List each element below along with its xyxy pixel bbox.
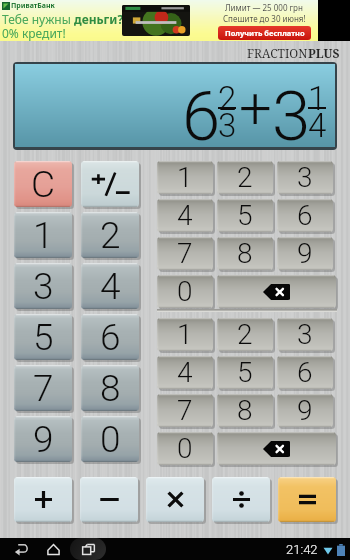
staticText: 2 bbox=[100, 214, 121, 257]
button[interactable]: Home bbox=[40, 540, 66, 558]
button[interactable]: 7 bbox=[157, 394, 213, 427]
button[interactable]: 6 bbox=[277, 199, 333, 232]
staticText: PLUS bbox=[308, 45, 340, 61]
staticText: 0 bbox=[100, 418, 121, 461]
staticText: 6 bbox=[100, 316, 121, 359]
staticText: Спешите до 30 июня! bbox=[223, 13, 306, 24]
staticText: 8 bbox=[237, 394, 253, 427]
staticText: 6 bbox=[297, 199, 313, 232]
button[interactable]: 6 bbox=[81, 314, 139, 360]
other: Backspace bbox=[263, 284, 290, 300]
button[interactable]: 1 bbox=[157, 161, 213, 194]
button[interactable]: Back bbox=[8, 540, 34, 558]
staticText: ПриватБанк bbox=[11, 1, 55, 11]
staticText: 4 bbox=[308, 106, 327, 145]
other: Multiply bbox=[164, 488, 187, 511]
button[interactable]: 8 bbox=[217, 394, 273, 427]
button[interactable]: 1 bbox=[14, 212, 72, 258]
staticText: 5 bbox=[33, 316, 54, 359]
staticText: Тебе нужны bbox=[2, 11, 74, 27]
staticText: 8 bbox=[100, 367, 121, 410]
staticText: 7 bbox=[177, 394, 193, 427]
staticText: 0 bbox=[177, 432, 193, 465]
staticText: 4 bbox=[100, 265, 121, 308]
staticText: Получить бесплатно bbox=[225, 28, 305, 38]
staticText: Лимит — 25 000 грн bbox=[225, 2, 303, 13]
button[interactable]: 5 bbox=[217, 199, 273, 232]
staticText: 9 bbox=[297, 237, 313, 270]
staticText: 5 bbox=[237, 356, 253, 389]
button[interactable]: Multiply bbox=[146, 477, 204, 522]
staticText: 0% кредит! bbox=[2, 25, 66, 41]
staticText: 0 bbox=[177, 275, 193, 308]
staticText: 9 bbox=[297, 394, 313, 427]
other: Back bbox=[14, 542, 28, 556]
other: Plus bbox=[32, 488, 55, 511]
button[interactable]: 2 bbox=[217, 318, 273, 351]
staticText: 7 bbox=[177, 237, 193, 270]
staticText: 1 bbox=[308, 79, 327, 118]
button[interactable]: 6 bbox=[277, 356, 333, 389]
button[interactable]: Получить бесплатно bbox=[218, 26, 311, 40]
button[interactable]: 3 bbox=[277, 318, 333, 351]
button[interactable]: 4 bbox=[157, 356, 213, 389]
button[interactable]: 0 bbox=[157, 275, 213, 308]
staticText: FRACTION bbox=[247, 45, 308, 61]
staticText: 5 bbox=[237, 199, 253, 232]
other: Home bbox=[47, 543, 60, 556]
button[interactable]: 0 bbox=[81, 416, 139, 462]
staticText: 8 bbox=[237, 237, 253, 270]
button[interactable]: 2 bbox=[217, 161, 273, 194]
button[interactable]: 9 bbox=[14, 416, 72, 462]
button[interactable]: 7 bbox=[14, 365, 72, 411]
button[interactable]: 5 bbox=[217, 356, 273, 389]
staticText: 6 bbox=[182, 76, 221, 146]
button[interactable]: 4 bbox=[81, 263, 139, 309]
staticText: 4 bbox=[177, 199, 193, 232]
staticText: 2 bbox=[237, 161, 253, 194]
button[interactable]: 2 bbox=[81, 212, 139, 258]
button[interactable]: Recent apps bbox=[70, 538, 106, 560]
button[interactable]: Divide bbox=[212, 477, 270, 522]
staticText: 7 bbox=[33, 367, 54, 410]
staticText: 9 bbox=[33, 418, 54, 461]
staticText: 1 bbox=[33, 214, 54, 257]
button[interactable]: 4 bbox=[157, 199, 213, 232]
button[interactable]: 7 bbox=[157, 237, 213, 270]
button[interactable]: 8 bbox=[217, 237, 273, 270]
button[interactable]: 1 bbox=[157, 318, 213, 351]
other: Battery bbox=[337, 544, 345, 556]
button[interactable]: 0 bbox=[157, 432, 213, 465]
button[interactable]: 3 bbox=[277, 161, 333, 194]
button[interactable]: ПриватБанк bbox=[0, 0, 318, 41]
staticText: 3 bbox=[272, 76, 311, 146]
button[interactable]: 8 bbox=[81, 365, 139, 411]
staticText: 3 bbox=[297, 318, 313, 351]
staticText: 4 bbox=[177, 356, 193, 389]
button[interactable]: 9 bbox=[277, 237, 333, 270]
staticText: 2 bbox=[218, 79, 237, 118]
button[interactable]: Plus minus sign bbox=[81, 161, 139, 207]
other: Plus minus sign bbox=[91, 171, 130, 198]
staticText: деньги? bbox=[74, 11, 124, 27]
other: Wi-Fi bbox=[323, 545, 333, 555]
button[interactable]: Minus bbox=[80, 477, 138, 522]
button[interactable]: Backspace bbox=[217, 275, 336, 308]
staticText: 1 bbox=[177, 161, 193, 194]
staticText: 3 bbox=[33, 265, 54, 308]
staticText: C bbox=[31, 163, 56, 206]
button[interactable]: 6 bbox=[15, 64, 335, 147]
other: Recent apps bbox=[82, 543, 95, 556]
other: Minus bbox=[98, 488, 121, 511]
button[interactable]: C bbox=[14, 161, 72, 207]
other: Divide bbox=[230, 488, 253, 511]
button[interactable]: 3 bbox=[14, 263, 72, 309]
button[interactable]: 5 bbox=[14, 314, 72, 360]
button[interactable]: Plus bbox=[14, 477, 72, 522]
staticText: 21:42 bbox=[286, 542, 318, 557]
staticText: 2 bbox=[237, 318, 253, 351]
button[interactable]: Equals bbox=[278, 477, 336, 522]
button[interactable]: Backspace bbox=[217, 432, 336, 465]
button[interactable]: 9 bbox=[277, 394, 333, 427]
other: Equals bbox=[296, 488, 319, 511]
